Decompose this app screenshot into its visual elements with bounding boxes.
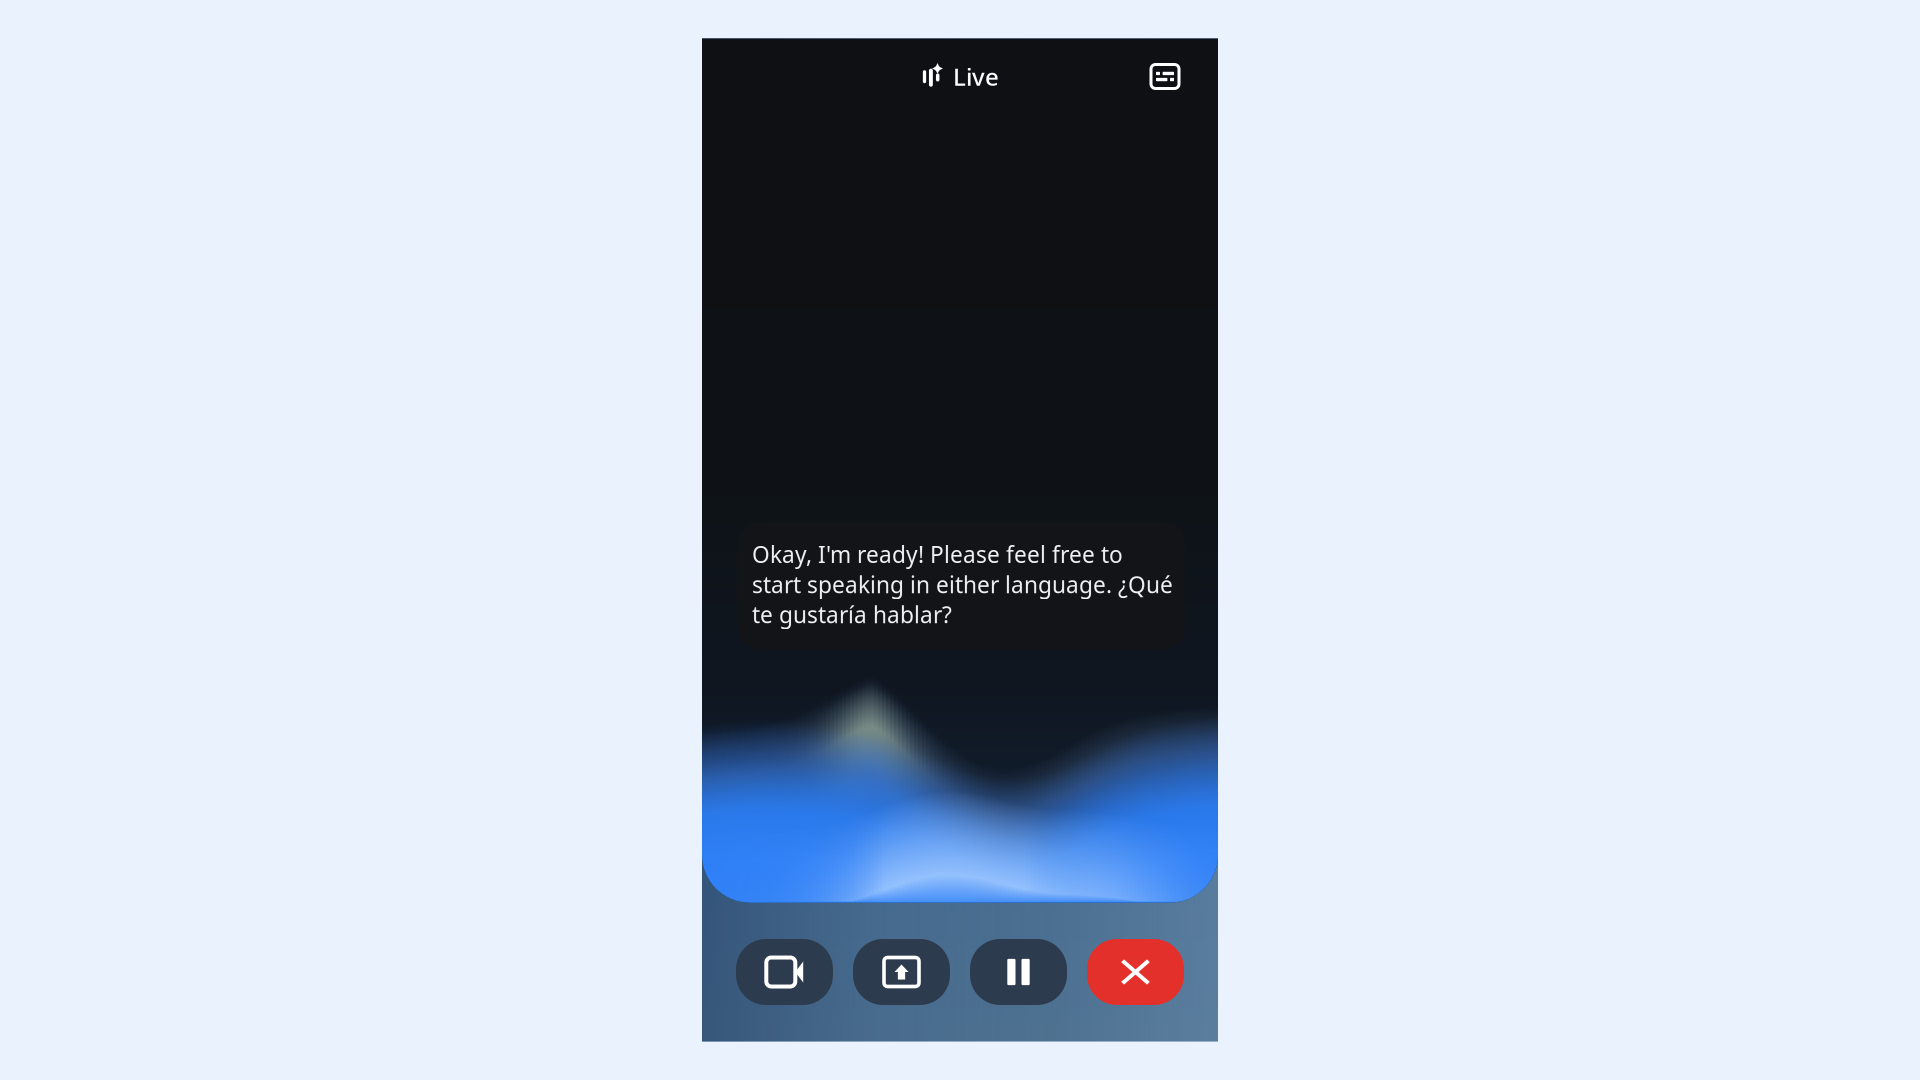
staticText: Live [953,61,999,92]
button[interactable]: Pause [970,939,1067,1005]
button[interactable]: Captions [1143,54,1187,98]
button[interactable]: Share screen [853,939,950,1005]
button[interactable]: Camera [736,939,833,1005]
button[interactable]: End [1087,939,1184,1005]
staticText: Okay, I'm ready! Please feel free to sta… [752,539,1173,629]
